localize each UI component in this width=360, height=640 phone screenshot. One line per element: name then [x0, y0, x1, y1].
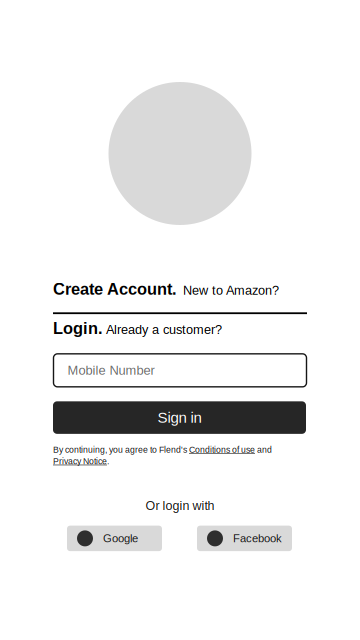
staticText: Conditions of use	[189, 445, 255, 454]
staticText: and	[255, 445, 272, 454]
button[interactable]: Sign in	[53, 401, 306, 434]
staticText: Privacy Notice	[53, 456, 107, 466]
button[interactable]: Privacy Notice	[53, 456, 107, 466]
button[interactable]: Conditions of use	[189, 445, 255, 454]
button[interactable]: Create Account.	[53, 280, 279, 298]
staticText: Mobile Number	[67, 363, 154, 378]
staticText: Or login with	[145, 499, 214, 513]
button[interactable]: Mobile Number	[53, 354, 306, 387]
staticText: Create Account.	[53, 280, 177, 298]
staticText: New to Amazon?	[183, 283, 279, 297]
staticText: .	[107, 456, 109, 466]
staticText: Google	[103, 532, 138, 545]
staticText: By continuing, you agree to Flend's	[53, 445, 189, 454]
button[interactable]: Facebook	[197, 526, 292, 551]
staticText: Facebook	[233, 532, 282, 545]
button[interactable]: Google	[67, 526, 162, 551]
button[interactable]: Login.	[53, 319, 222, 337]
staticText: Sign in	[157, 409, 201, 426]
staticText: Already a customer?	[106, 322, 222, 337]
staticText: Login.	[53, 319, 103, 337]
